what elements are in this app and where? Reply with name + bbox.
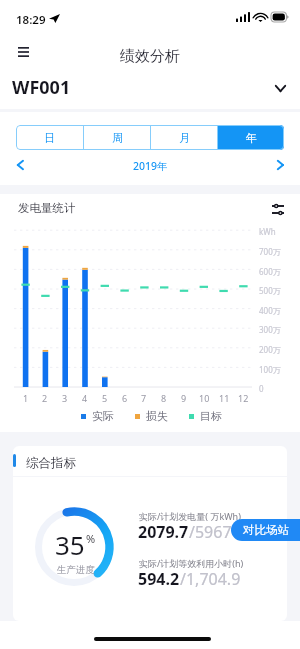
staticText: 2019年 xyxy=(133,159,168,173)
staticText: 综合指标 xyxy=(26,455,76,471)
staticText: 损失 xyxy=(146,409,168,423)
staticText: 实际/计划发电量( 万kWh) xyxy=(139,510,241,522)
staticText: 12 xyxy=(238,392,249,404)
staticText: 7 xyxy=(141,392,147,404)
button[interactable]: 月 xyxy=(151,125,217,150)
button[interactable]: Chart settings xyxy=(266,198,289,221)
staticText: 11 xyxy=(219,392,230,404)
staticText: 1 xyxy=(23,392,29,404)
staticText: 实际/计划等效利用小时(h) xyxy=(139,557,244,569)
staticText: 发电量统计 xyxy=(18,201,76,215)
staticText: 200万 xyxy=(259,344,281,355)
button[interactable]: WF001 xyxy=(0,72,300,102)
staticText: 5 xyxy=(102,392,108,404)
staticText: 594.2 xyxy=(138,568,180,590)
staticText: 周 xyxy=(112,131,123,145)
staticText: 生产进度 xyxy=(57,564,95,576)
staticText: 2079.7 xyxy=(138,521,189,543)
staticText: % xyxy=(86,531,96,546)
button[interactable]: Previous year xyxy=(9,154,31,176)
staticText: 0 xyxy=(259,383,264,394)
button[interactable]: Next year xyxy=(269,154,291,176)
staticText: kWh xyxy=(259,226,276,237)
staticText: 绩效分析 xyxy=(120,47,180,66)
staticText: 10 xyxy=(199,392,210,404)
staticText: 18:29 xyxy=(16,12,46,28)
staticText: 2 xyxy=(42,392,48,404)
staticText: 700万 xyxy=(259,246,281,257)
staticText: 目标 xyxy=(200,409,222,423)
staticText: 对比场站 xyxy=(243,523,289,537)
staticText: 500万 xyxy=(259,285,281,296)
button[interactable]: 周 xyxy=(84,125,150,150)
staticText: 400万 xyxy=(259,305,281,316)
staticText: 6 xyxy=(122,392,128,404)
staticText: 年 xyxy=(246,131,257,145)
button[interactable]: Menu xyxy=(9,38,37,66)
staticText: /1,704.9 xyxy=(180,568,241,590)
button[interactable]: 日 xyxy=(16,125,83,150)
staticText: 4 xyxy=(82,392,88,404)
staticText: 3 xyxy=(62,392,68,404)
staticText: 300万 xyxy=(259,324,281,335)
staticText: 600万 xyxy=(259,266,281,277)
staticText: 35 xyxy=(55,527,85,562)
staticText: 月 xyxy=(179,131,190,145)
staticText: WF001 xyxy=(12,75,71,100)
staticText: 实际 xyxy=(92,409,114,423)
button[interactable]: 对比场站 xyxy=(231,519,300,541)
button[interactable]: 年 xyxy=(218,125,284,150)
staticText: 9 xyxy=(181,392,187,404)
staticText: /5967 xyxy=(189,521,232,543)
staticText: 8 xyxy=(161,392,167,404)
staticText: 日 xyxy=(44,131,55,145)
staticText: 100万 xyxy=(259,364,281,375)
